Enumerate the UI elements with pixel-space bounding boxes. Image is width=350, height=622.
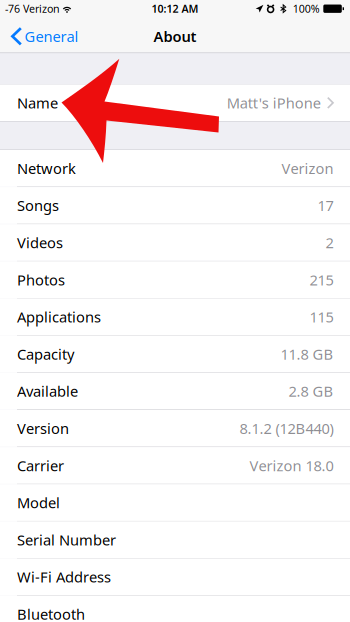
button[interactable]: Name (0, 84, 350, 121)
staticText: Serial Number (17, 530, 116, 549)
button[interactable]: Videos (0, 224, 350, 261)
staticText: 100% (293, 2, 320, 16)
staticText: 11.8 GB (280, 344, 333, 364)
staticText: Songs (17, 196, 59, 215)
button[interactable]: Network (0, 150, 350, 187)
button[interactable]: Photos (0, 261, 350, 298)
button[interactable]: Songs (0, 187, 350, 224)
staticText: Capacity (17, 344, 74, 364)
staticText: Matt's iPhone (227, 93, 321, 113)
staticText: -76 Verizon (5, 2, 60, 16)
staticText: About (153, 27, 196, 46)
staticText: Wi-Fi Address (17, 567, 111, 587)
staticText: Bluetooth (17, 604, 85, 622)
staticText: 17 (317, 196, 333, 215)
staticText: Model (17, 493, 60, 512)
staticText: Carrier (17, 456, 64, 475)
button[interactable]: Version (0, 410, 350, 447)
staticText: 10:12 AM (151, 2, 198, 16)
staticText: Name (17, 93, 58, 113)
button[interactable]: Bluetooth (0, 596, 350, 622)
staticText: Applications (17, 307, 101, 327)
button[interactable]: Available (0, 373, 350, 409)
staticText: 2 (325, 233, 333, 252)
staticText: Videos (17, 233, 63, 252)
staticText: Verizon 18.0 (249, 456, 333, 475)
button[interactable]: Capacity (0, 336, 350, 372)
button[interactable]: General (0, 20, 87, 53)
staticText: Verizon (281, 158, 333, 178)
button[interactable]: Wi-Fi Address (0, 559, 350, 595)
staticText: 115 (309, 307, 333, 327)
staticText: Available (17, 381, 78, 401)
staticText: 8.1.2 (12B440) (239, 419, 333, 438)
staticText: 2.8 GB (288, 381, 333, 401)
staticText: Version (17, 419, 69, 438)
button[interactable]: Applications (0, 299, 350, 335)
staticText: 215 (309, 270, 333, 289)
staticText: Network (17, 158, 76, 178)
button[interactable]: Model (0, 484, 350, 521)
staticText: General (24, 27, 78, 46)
button[interactable]: Carrier (0, 447, 350, 484)
staticText: Photos (17, 270, 65, 289)
button[interactable]: Serial Number (0, 521, 350, 558)
